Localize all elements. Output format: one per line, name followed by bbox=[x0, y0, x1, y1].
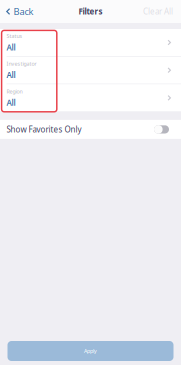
staticText: All bbox=[6, 97, 15, 108]
staticText: Filters bbox=[78, 6, 102, 17]
button[interactable]: Show Favorites Only bbox=[154, 125, 169, 134]
button[interactable]: Back bbox=[0, 0, 39, 22]
button[interactable]: Clear All bbox=[138, 0, 181, 22]
staticText: All bbox=[6, 70, 15, 80]
staticText: All bbox=[6, 42, 15, 53]
staticText: Clear All bbox=[143, 6, 173, 17]
staticText: Region bbox=[6, 88, 22, 95]
button[interactable]: Region bbox=[0, 84, 181, 111]
staticText: Apply bbox=[84, 347, 97, 355]
staticText: Status bbox=[6, 32, 22, 39]
staticText: Show Favorites Only bbox=[6, 124, 81, 135]
staticText: Back bbox=[14, 5, 34, 18]
button[interactable]: Status bbox=[0, 29, 181, 56]
staticText: Investigator bbox=[6, 60, 36, 67]
button[interactable]: Investigator bbox=[0, 57, 181, 84]
button[interactable]: Apply bbox=[7, 341, 173, 361]
